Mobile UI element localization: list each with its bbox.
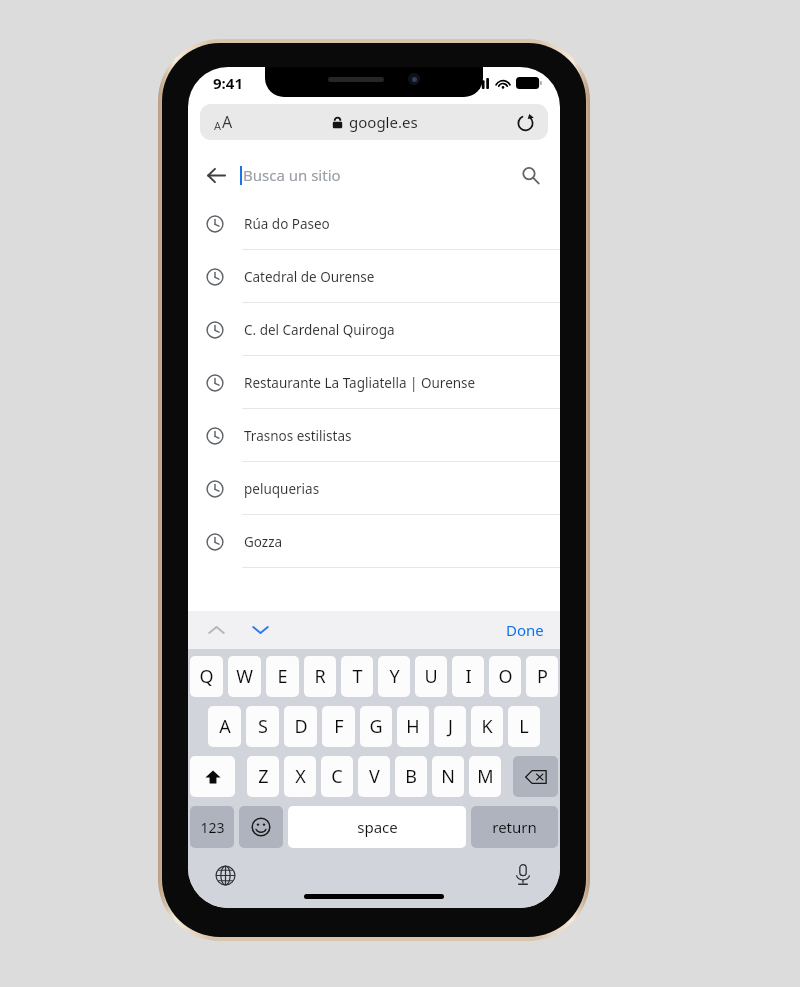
button[interactable]: Z [247,756,279,797]
staticText: Gozza [244,533,283,551]
button[interactable]: S [246,706,279,747]
staticText: V [369,764,380,789]
button[interactable]: W [228,656,261,697]
staticText: Y [389,664,400,689]
staticText: google.es [349,112,418,132]
staticText: C. del Cardenal Quiroga [244,321,395,339]
button[interactable]: Emoji [239,806,283,848]
staticText: S [258,714,268,739]
button[interactable]: return [471,806,558,848]
button[interactable]: X [284,756,316,797]
button[interactable]: Next [244,614,276,646]
staticText: T [352,664,363,689]
button[interactable]: B [395,756,427,797]
button[interactable]: D [284,706,317,747]
button[interactable]: Trasnos estilistas [188,409,560,462]
staticText: G [369,714,383,739]
staticText: A [219,714,231,739]
button[interactable]: V [358,756,390,797]
button[interactable]: Q [190,656,223,697]
button[interactable]: A [208,706,241,747]
staticText: Trasnos estilistas [244,427,352,445]
staticText: Catedral de Ourense [244,268,375,286]
staticText: A [222,111,233,133]
button[interactable]: Gozza [188,515,560,568]
staticText: I [465,664,472,689]
staticText: return [492,817,537,837]
staticText: Q [199,664,214,689]
button[interactable]: I [452,656,484,697]
button[interactable]: K [471,706,503,747]
button[interactable]: Change keyboard [210,860,240,890]
button[interactable]: Search [514,159,546,191]
button[interactable]: O [489,656,521,697]
button[interactable]: Reload [512,109,538,135]
staticText: peluquerias [244,480,320,498]
staticText: O [498,664,513,689]
staticText: A [214,118,222,133]
button[interactable]: H [397,706,429,747]
staticText: B [405,764,417,789]
staticText: J [448,714,453,739]
staticText: K [481,714,493,739]
button[interactable]: Y [378,656,410,697]
button[interactable]: M [469,756,501,797]
button[interactable]: 123 [190,806,234,848]
staticText: Z [258,764,269,789]
button[interactable]: Text size [200,104,548,140]
staticText: L [519,714,529,739]
button[interactable]: G [360,706,392,747]
staticText: 9:41 [213,73,243,93]
button[interactable]: R [304,656,336,697]
button[interactable]: Restaurante La Tagliatella | Ourense [188,356,560,409]
staticText: U [424,664,438,689]
button[interactable]: Catedral de Ourense [188,250,560,303]
staticText: D [294,714,308,739]
button[interactable]: F [322,706,355,747]
staticText: Done [506,620,544,640]
button[interactable]: Shift [190,756,235,797]
button[interactable]: Done [502,616,548,644]
button[interactable]: E [266,656,299,697]
staticText: M [477,764,494,789]
button[interactable]: U [415,656,447,697]
button[interactable]: Back [188,152,560,197]
staticText: C [331,764,343,789]
button[interactable]: Back [200,159,232,191]
button[interactable]: C. del Cardenal Quiroga [188,303,560,356]
staticText: Busca un sitio [243,165,341,185]
button[interactable]: C [321,756,353,797]
button[interactable]: Text size [214,111,233,133]
button[interactable]: Dictate [508,860,538,890]
button[interactable]: L [508,706,540,747]
staticText: space [357,817,398,837]
staticText: R [314,664,326,689]
button[interactable]: N [432,756,464,797]
staticText: W [236,664,253,689]
staticText: E [277,664,288,689]
button[interactable]: Rúa do Paseo [188,197,560,250]
button[interactable]: peluquerias [188,462,560,515]
button[interactable]: Delete [513,756,558,797]
button[interactable]: J [434,706,466,747]
staticText: H [406,714,420,739]
staticText: X [295,764,306,789]
staticText: Rúa do Paseo [244,215,330,233]
button[interactable]: space [288,806,466,848]
staticText: 123 [200,818,225,837]
staticText: N [441,764,455,789]
button[interactable]: Previous [200,614,232,646]
staticText: F [334,714,344,739]
staticText: P [537,664,548,689]
button[interactable]: P [526,656,558,697]
button[interactable]: T [341,656,373,697]
staticText: Restaurante La Tagliatella | Ourense [244,374,476,392]
